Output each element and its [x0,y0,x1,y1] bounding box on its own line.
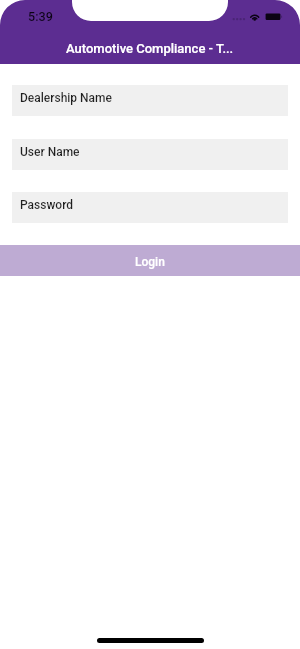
button[interactable]: Dealership Name [12,85,288,116]
staticText: Login [135,255,165,269]
staticText: Automotive Compliance - T... [66,41,234,56]
staticText: Dealership Name [20,91,112,105]
button[interactable]: Login [0,245,300,276]
staticText: User Name [20,145,80,159]
other: Home indicator [97,638,204,643]
button[interactable]: Password [12,192,288,223]
button[interactable]: User Name [12,139,288,170]
staticText: 5:39 [28,9,53,24]
staticText: Password [20,198,74,212]
